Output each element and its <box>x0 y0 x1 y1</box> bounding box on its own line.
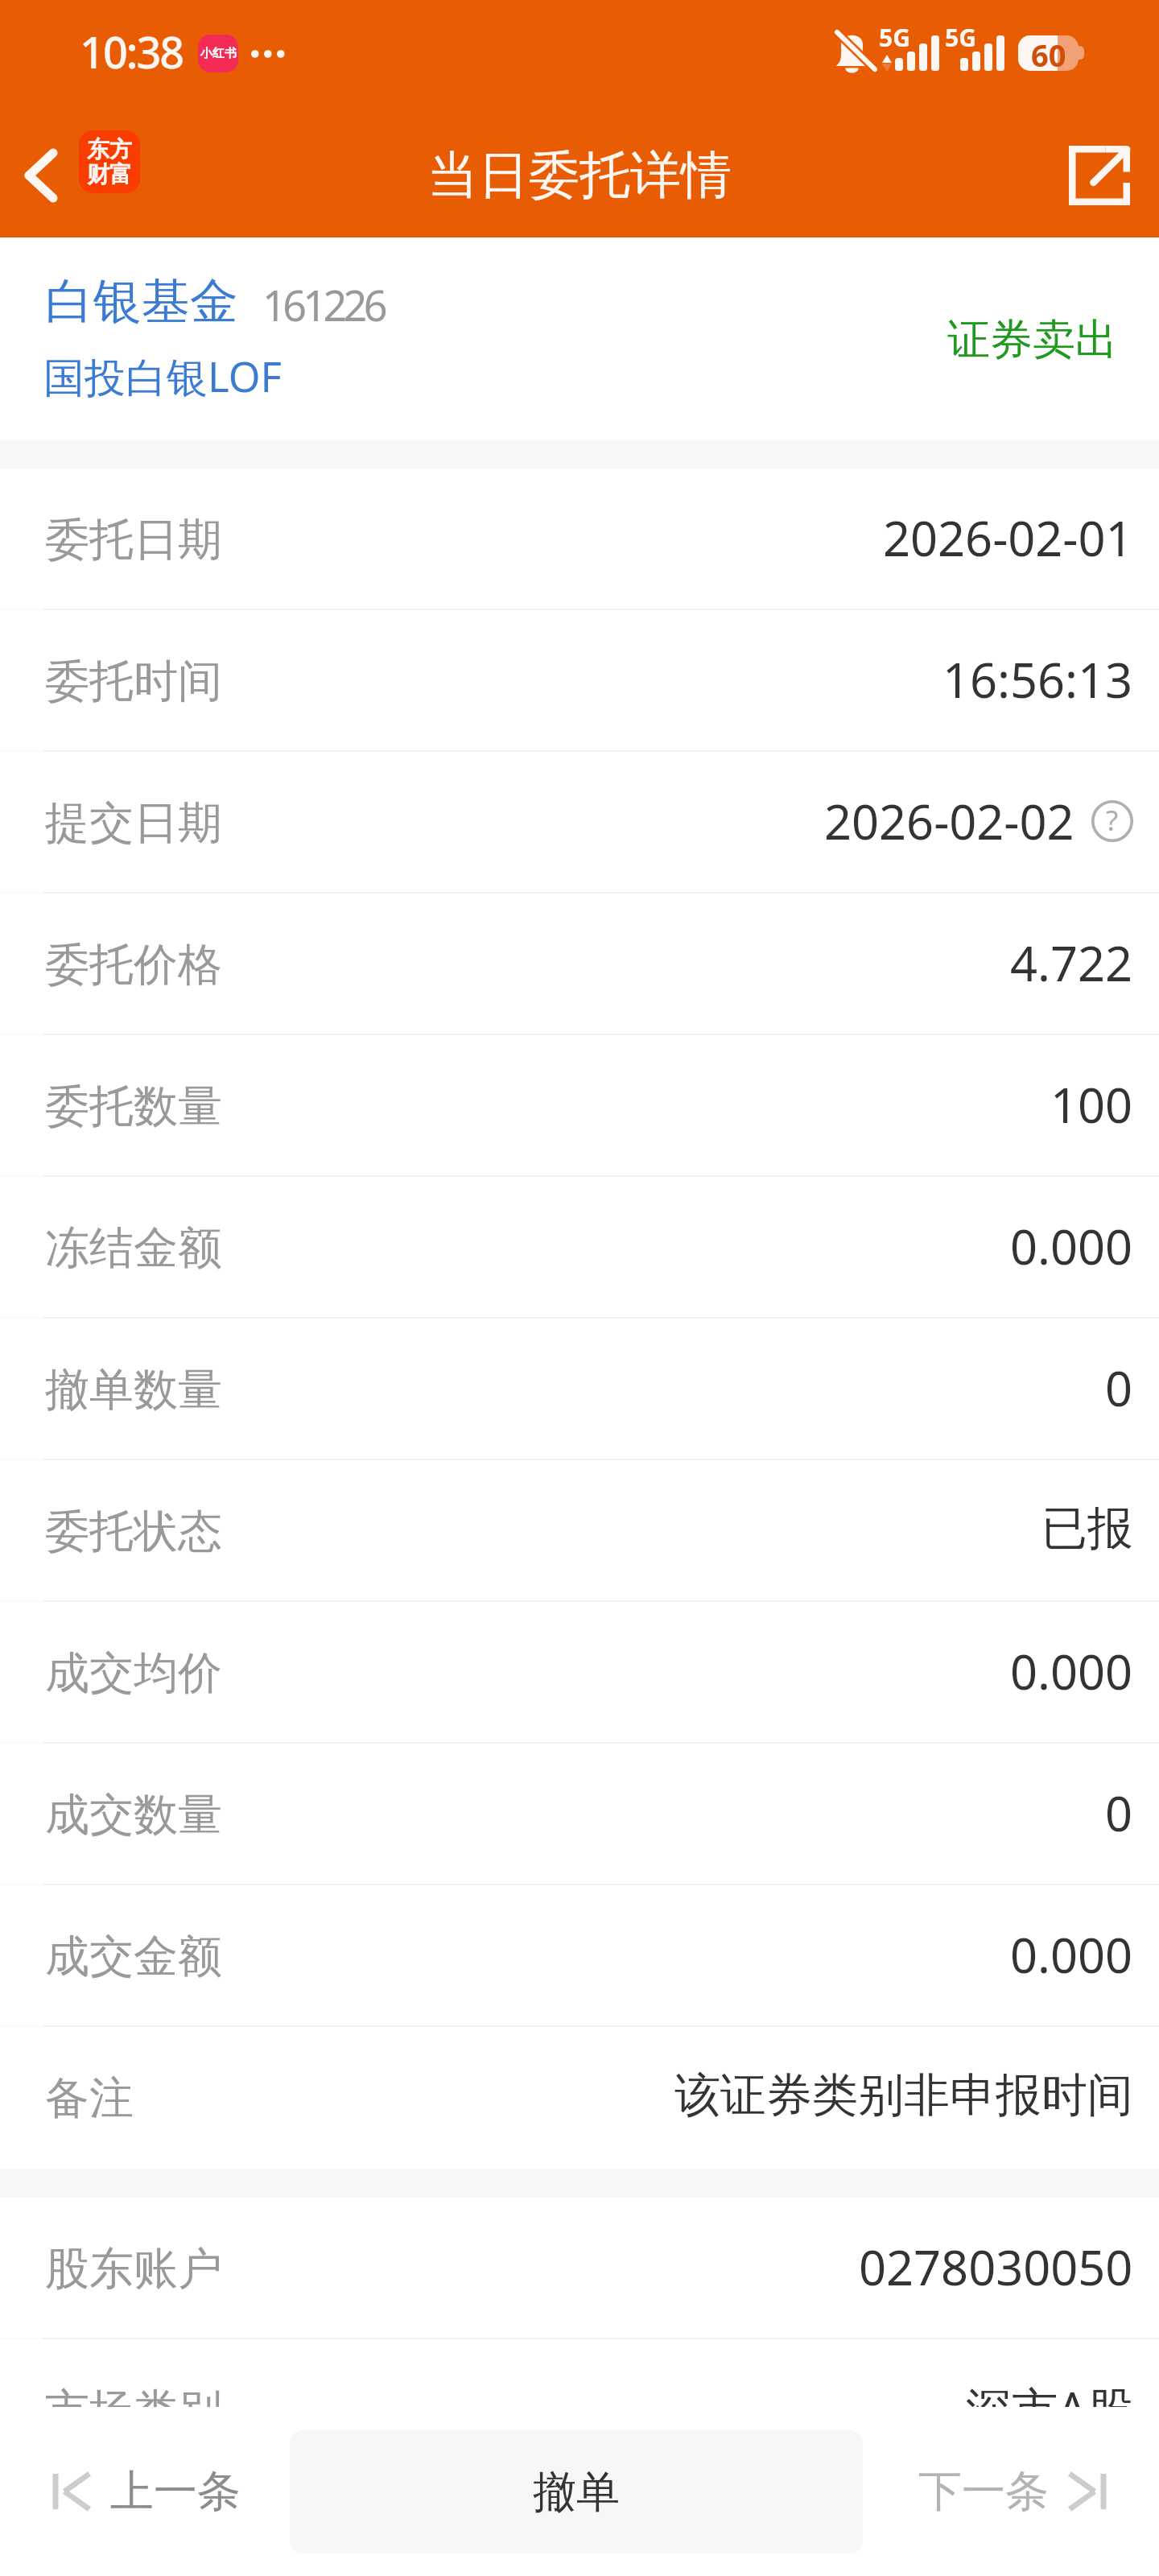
staticText: 4.722 <box>1010 930 1133 995</box>
button[interactable]: 委托数量 <box>0 1035 1159 1177</box>
button[interactable]: 东方 <box>79 130 140 193</box>
button[interactable]: 白银基金 <box>45 271 384 332</box>
button[interactable]: 市场类别 <box>0 2339 1159 2481</box>
staticText: 冻结金额 <box>45 1220 222 1276</box>
staticText: 0.000 <box>1010 1638 1133 1703</box>
staticText: 委托时间 <box>45 654 222 709</box>
staticText: 该证券类别非申报时间 <box>674 2066 1133 2124</box>
button[interactable]: 分享 <box>1047 113 1152 237</box>
staticText: 白银基金 <box>45 271 238 332</box>
staticText: 当日委托详情 <box>427 143 732 207</box>
button[interactable]: 委托状态 <box>0 1460 1159 1602</box>
staticText: 上一条 <box>110 2464 241 2519</box>
staticText: 股东账户 <box>45 2241 222 2297</box>
staticText: 委托数量 <box>45 1079 222 1134</box>
staticText: 成交金额 <box>45 1929 222 1984</box>
staticText: 0 <box>1105 1355 1133 1420</box>
staticText: 市场类别 <box>45 2383 222 2438</box>
staticText: ? <box>1106 801 1119 840</box>
staticText: 5G <box>945 21 976 54</box>
staticText: 财富 <box>87 160 132 188</box>
staticText: 成交均价 <box>45 1645 222 1701</box>
staticText: 撤单 <box>533 2465 620 2520</box>
staticText: 0 <box>1105 1780 1133 1845</box>
staticText: 5G <box>879 21 910 54</box>
staticText: 已报 <box>1041 1500 1133 1558</box>
button[interactable]: 成交数量 <box>0 1744 1159 1885</box>
staticText: 证券卖出 <box>947 313 1118 367</box>
button[interactable]: 委托日期 <box>0 469 1159 610</box>
button[interactable]: 撤单数量 <box>0 1319 1159 1460</box>
button[interactable]: 下一条 <box>918 2464 1107 2519</box>
staticText: 备注 <box>45 2070 134 2126</box>
button[interactable]: 成交均价 <box>0 1602 1159 1744</box>
staticText: 委托价格 <box>45 937 222 993</box>
button[interactable]: 返回 <box>8 113 74 237</box>
staticText: 100 <box>1050 1071 1133 1137</box>
button[interactable]: 股东账户 <box>0 2198 1159 2339</box>
button[interactable]: 撤单 <box>290 2430 863 2553</box>
button[interactable]: 委托时间 <box>0 610 1159 752</box>
staticText: 提交日期 <box>45 795 222 851</box>
staticText: 2026-02-02 <box>824 788 1074 853</box>
staticText: 0.000 <box>1010 1922 1133 1987</box>
button[interactable]: 备注 <box>0 2027 1159 2169</box>
staticText: 0278030050 <box>859 2234 1133 2299</box>
button[interactable]: 说明 <box>1091 800 1133 842</box>
button[interactable]: 冻结金额 <box>0 1177 1159 1319</box>
button[interactable]: 成交金额 <box>0 1885 1159 2027</box>
staticText: 小红书 <box>200 46 237 61</box>
button[interactable]: 委托价格 <box>0 894 1159 1035</box>
button[interactable]: 提交日期 <box>0 752 1159 894</box>
staticText: 下一条 <box>918 2464 1049 2519</box>
staticText: 成交数量 <box>45 1787 222 1843</box>
staticText: 10:38 <box>80 22 184 81</box>
staticText: 撤单数量 <box>45 1362 222 1418</box>
staticText: 委托状态 <box>45 1504 222 1559</box>
staticText: 60 <box>1031 34 1066 76</box>
staticText: 委托日期 <box>45 512 222 568</box>
staticText: 161226 <box>262 276 384 333</box>
staticText: 16:56:13 <box>942 646 1133 712</box>
button[interactable]: 国投白银LOF <box>43 348 283 404</box>
staticText: 深市A股 <box>966 2376 1133 2439</box>
staticText: 0.000 <box>1010 1213 1133 1278</box>
staticText: 东方 <box>87 135 132 163</box>
staticText: 2026-02-01 <box>883 505 1133 570</box>
button[interactable]: 上一条 <box>52 2464 241 2519</box>
